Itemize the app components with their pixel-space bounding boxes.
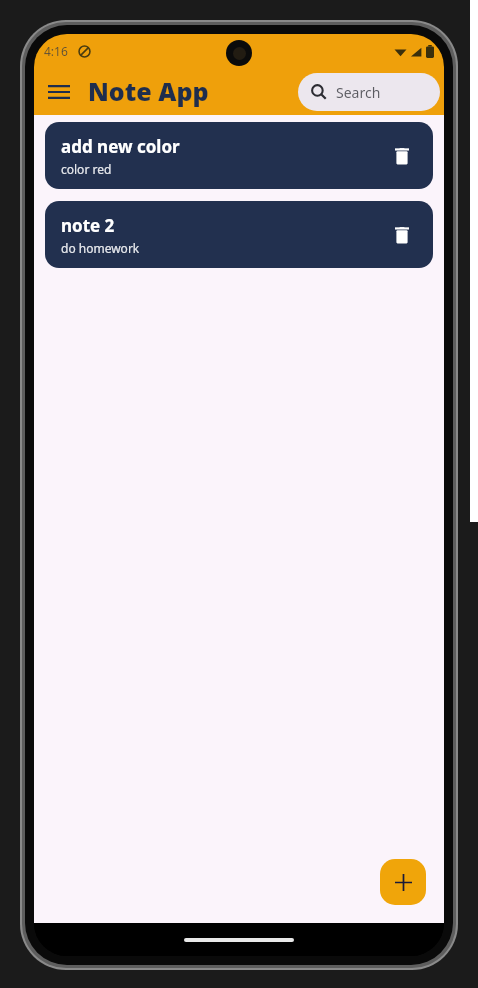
staticText: add new color bbox=[61, 135, 180, 158]
staticText: Note App bbox=[88, 74, 209, 108]
button[interactable]: Add note bbox=[380, 859, 426, 905]
button[interactable]: Delete note bbox=[385, 218, 419, 252]
button[interactable]: Menu bbox=[40, 73, 78, 111]
staticText: note 2 bbox=[61, 214, 115, 237]
button[interactable]: Delete note bbox=[385, 139, 419, 173]
button[interactable]: add new color bbox=[45, 122, 433, 189]
button[interactable]: note 2 bbox=[45, 201, 433, 268]
staticText: color red bbox=[61, 161, 112, 177]
staticText: Search bbox=[336, 83, 381, 102]
button[interactable]: Search bbox=[298, 73, 440, 111]
staticText: 4:16 bbox=[44, 43, 68, 59]
staticText: do homework bbox=[61, 240, 140, 256]
